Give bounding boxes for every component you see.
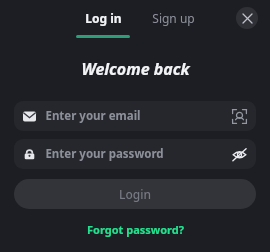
button[interactable]: Show password (230, 145, 248, 163)
button[interactable]: Close (236, 7, 258, 29)
staticText: Log in (85, 10, 122, 26)
button[interactable]: Enter your password (14, 139, 256, 169)
staticText: Enter your password (45, 146, 164, 162)
button[interactable]: Enter your email (14, 101, 256, 131)
button[interactable]: Forgot password? (77, 219, 194, 240)
button[interactable]: Scan face ID (230, 107, 248, 125)
button[interactable]: Login (14, 179, 256, 209)
staticText: Login (119, 186, 151, 202)
staticText: Enter your email (45, 108, 141, 124)
staticText: Sign up (152, 10, 195, 26)
button[interactable]: Sign up (144, 6, 203, 30)
button[interactable]: Log in (68, 6, 138, 42)
staticText: Welcome back (81, 58, 190, 80)
staticText: Forgot password? (87, 222, 184, 237)
